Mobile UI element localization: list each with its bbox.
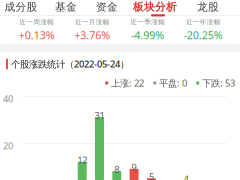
button[interactable]: 基金: [0, 0, 48, 16]
staticText: 12: [77, 154, 87, 166]
staticText: 20: [3, 139, 13, 152]
staticText: 近一月涨幅: [75, 18, 110, 26]
staticText: 5: [149, 170, 154, 180]
staticText: 近一周涨幅: [19, 18, 54, 26]
button[interactable]: 成分股: [0, 0, 48, 16]
button[interactable]: 龙股: [0, 0, 48, 16]
staticText: 40: [3, 92, 13, 105]
staticText: -4.99%: [131, 28, 164, 42]
staticText: +0.13%: [19, 28, 55, 42]
button[interactable]: 资金: [0, 0, 48, 16]
button[interactable]: 板块分析: [0, 0, 48, 16]
staticText: 板块分析: [133, 0, 177, 13]
staticText: 资金: [96, 0, 118, 13]
staticText: 基金: [55, 0, 77, 13]
staticText: 龙股: [197, 0, 219, 13]
staticText: 下跌: 53: [202, 77, 235, 89]
staticText: 平盘: 0: [159, 77, 187, 89]
staticText: +3.76%: [74, 28, 110, 42]
staticText: 31: [94, 109, 104, 121]
staticText: 8: [114, 163, 119, 176]
staticText: 上涨: 22: [111, 77, 144, 89]
staticText: 4: [183, 173, 188, 180]
staticText: -20.25%: [184, 28, 223, 42]
staticText: 近一年涨幅: [186, 18, 221, 26]
staticText: 近一季涨幅: [130, 18, 165, 26]
staticText: 个股涨跌统计（2022-05-24）: [11, 58, 129, 70]
staticText: 9: [132, 161, 137, 173]
staticText: 成分股: [4, 0, 37, 13]
